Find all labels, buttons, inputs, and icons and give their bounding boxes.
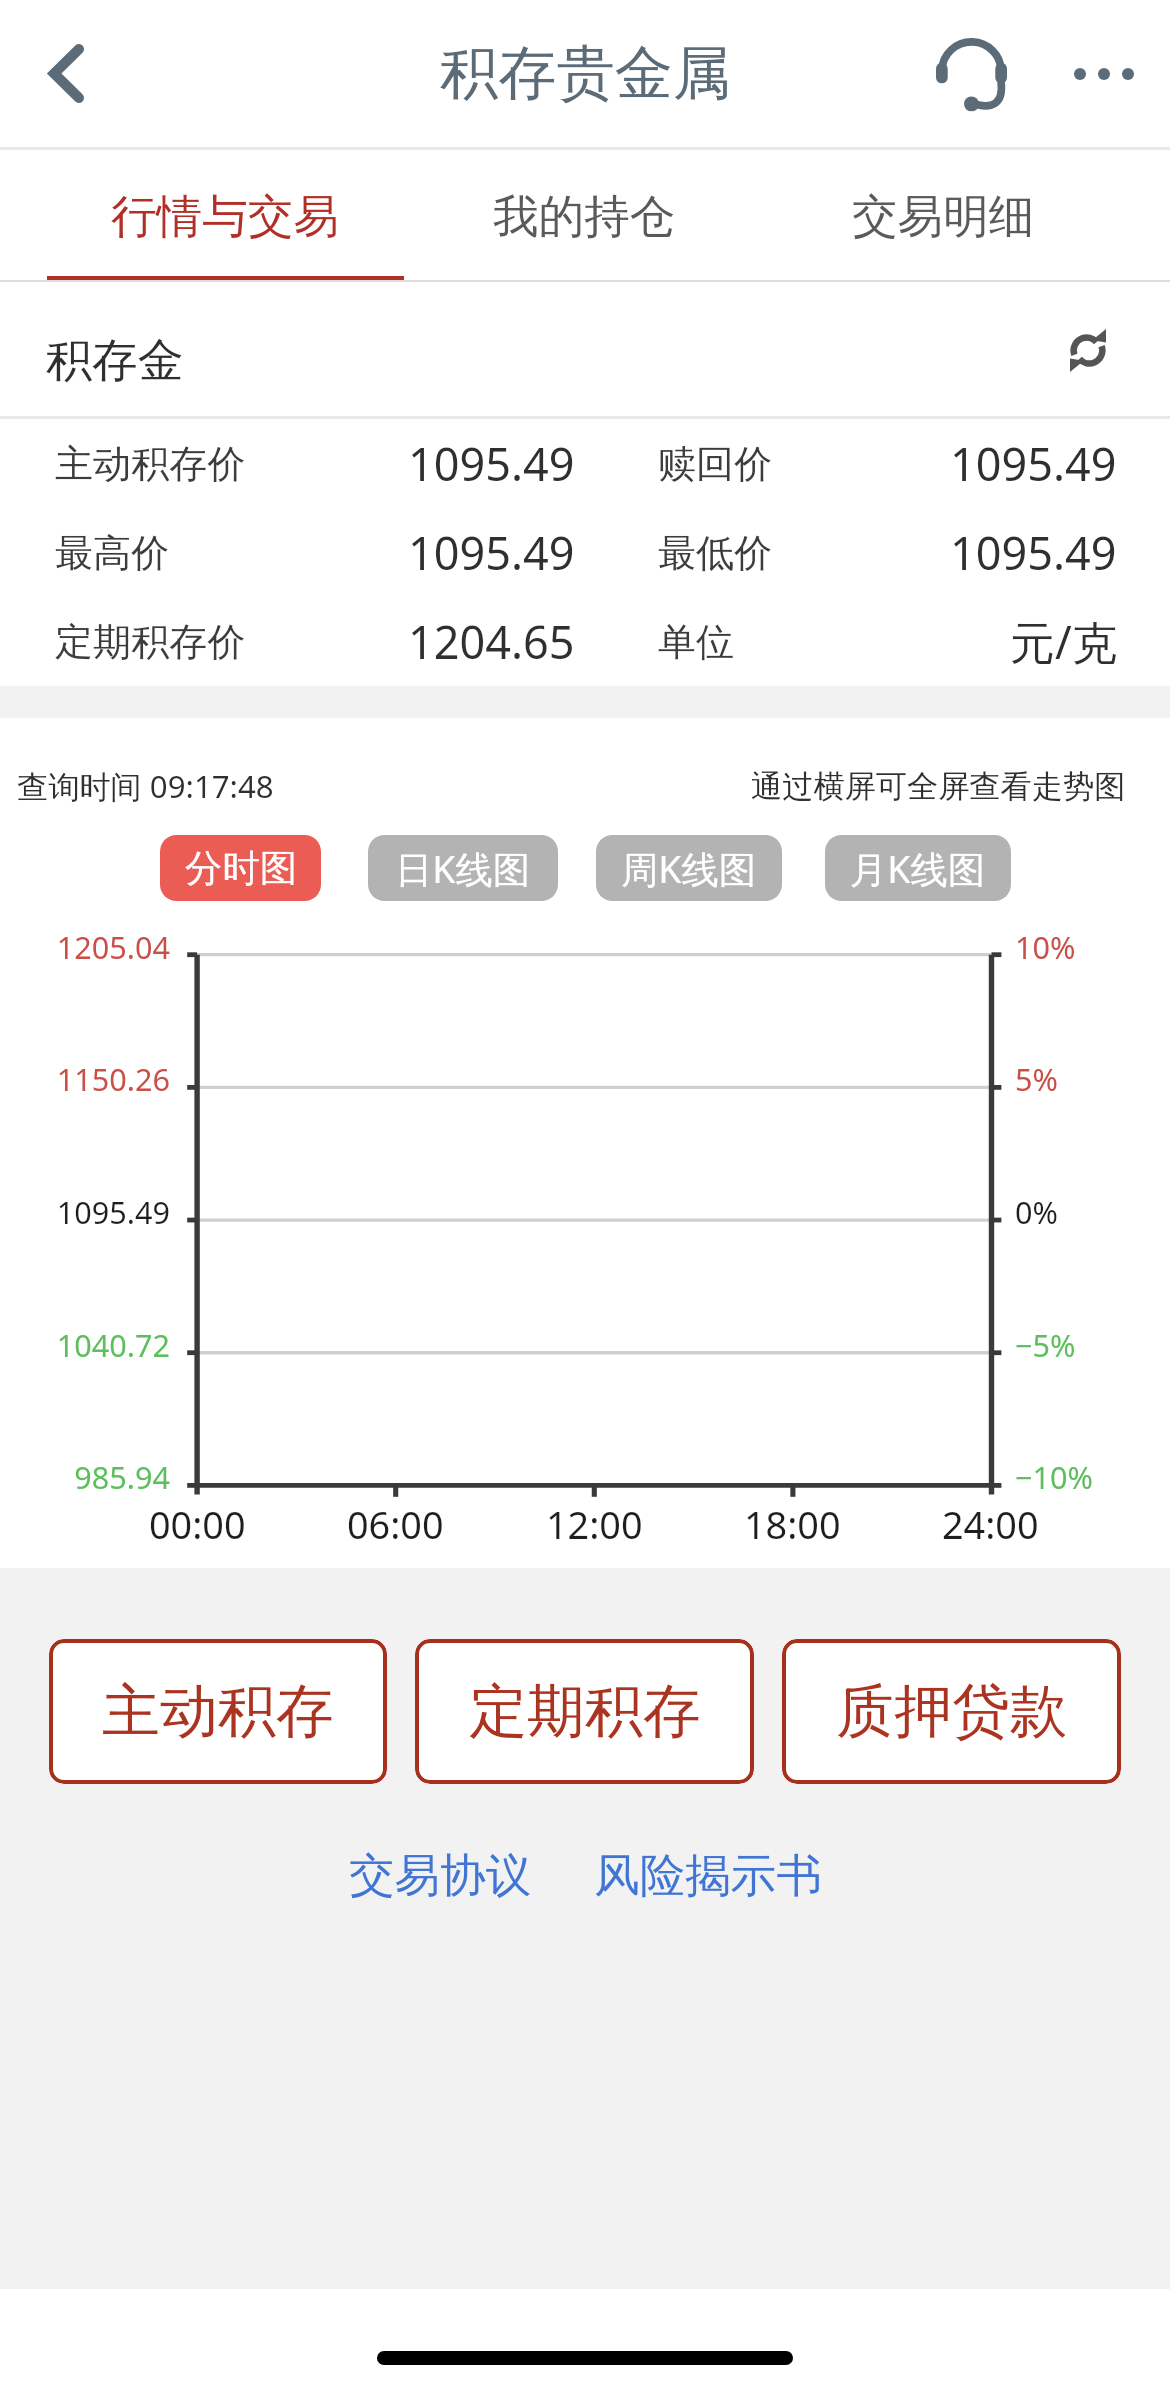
button[interactable]: 质押贷款 [782,1639,1121,1784]
staticText: 月K线图 [850,843,986,894]
staticText: 1095.49 [0,1191,170,1233]
staticText: 主动积存价 [55,440,246,488]
button[interactable]: 定期积存 [415,1639,754,1784]
staticText: 06:00 [347,1499,444,1550]
staticText: 主动积存 [102,1675,334,1748]
button[interactable]: 月K线图 [825,835,1011,901]
staticText: 分时图 [185,845,297,892]
staticText: −10% [1015,1456,1093,1498]
staticText: 元/克 [1010,611,1117,672]
staticText: 1204.65 [408,611,575,672]
staticText: 1095.49 [950,522,1117,583]
staticText: 质押贷款 [836,1675,1068,1748]
button[interactable]: More [1038,8,1170,140]
staticText: 单位 [658,618,735,666]
staticText: 最高价 [55,529,170,577]
staticText: 最低价 [658,529,773,577]
staticText: 赎回价 [658,440,773,488]
staticText: 1095.49 [408,433,575,494]
button[interactable]: 分时图 [160,835,321,901]
button[interactable]: 日K线图 [368,835,558,901]
button[interactable]: 行情与交易 [45,150,405,280]
staticText: 定期积存 [469,1675,701,1748]
staticText: 交易明细 [852,188,1035,245]
staticText: 周K线图 [621,843,757,894]
staticText: 10% [1015,926,1076,968]
staticText: 5% [1015,1058,1058,1100]
staticText: 查询时间 09:17:48 [17,765,274,808]
staticText: 交易协议 [349,1847,532,1904]
button[interactable]: 交易明细 [764,150,1123,280]
button[interactable]: 周K线图 [596,835,782,901]
staticText: 定期积存价 [55,618,246,666]
button[interactable]: 风险揭示书 [576,1829,840,1922]
staticText: 985.94 [0,1456,170,1498]
staticText: 1095.49 [950,433,1117,494]
staticText: 通过横屏可全屏查看走势图 [751,767,1126,806]
staticText: 风险揭示书 [594,1847,822,1904]
button[interactable]: Customer service [905,8,1037,140]
staticText: 1040.72 [0,1324,170,1366]
staticText: 12:00 [546,1499,643,1550]
staticText: 1205.04 [0,926,170,968]
staticText: 0% [1015,1191,1058,1233]
button[interactable]: Refresh [1037,299,1139,401]
button[interactable]: Back [0,0,132,147]
staticText: 24:00 [942,1499,1039,1550]
button[interactable]: 主动积存 [49,1639,387,1784]
staticText: 我的持仓 [493,188,676,245]
staticText: 18:00 [744,1499,841,1550]
staticText: 1150.26 [0,1058,170,1100]
staticText: 1095.49 [408,522,575,583]
staticText: −5% [1015,1324,1076,1366]
staticText: 行情与交易 [111,188,339,245]
staticText: 积存贵金属 [440,37,731,110]
staticText: 00:00 [149,1499,246,1550]
button[interactable]: 交易协议 [331,1829,550,1922]
staticText: 日K线图 [395,843,531,894]
staticText: 积存金 [46,332,184,390]
button[interactable]: 我的持仓 [405,150,764,280]
